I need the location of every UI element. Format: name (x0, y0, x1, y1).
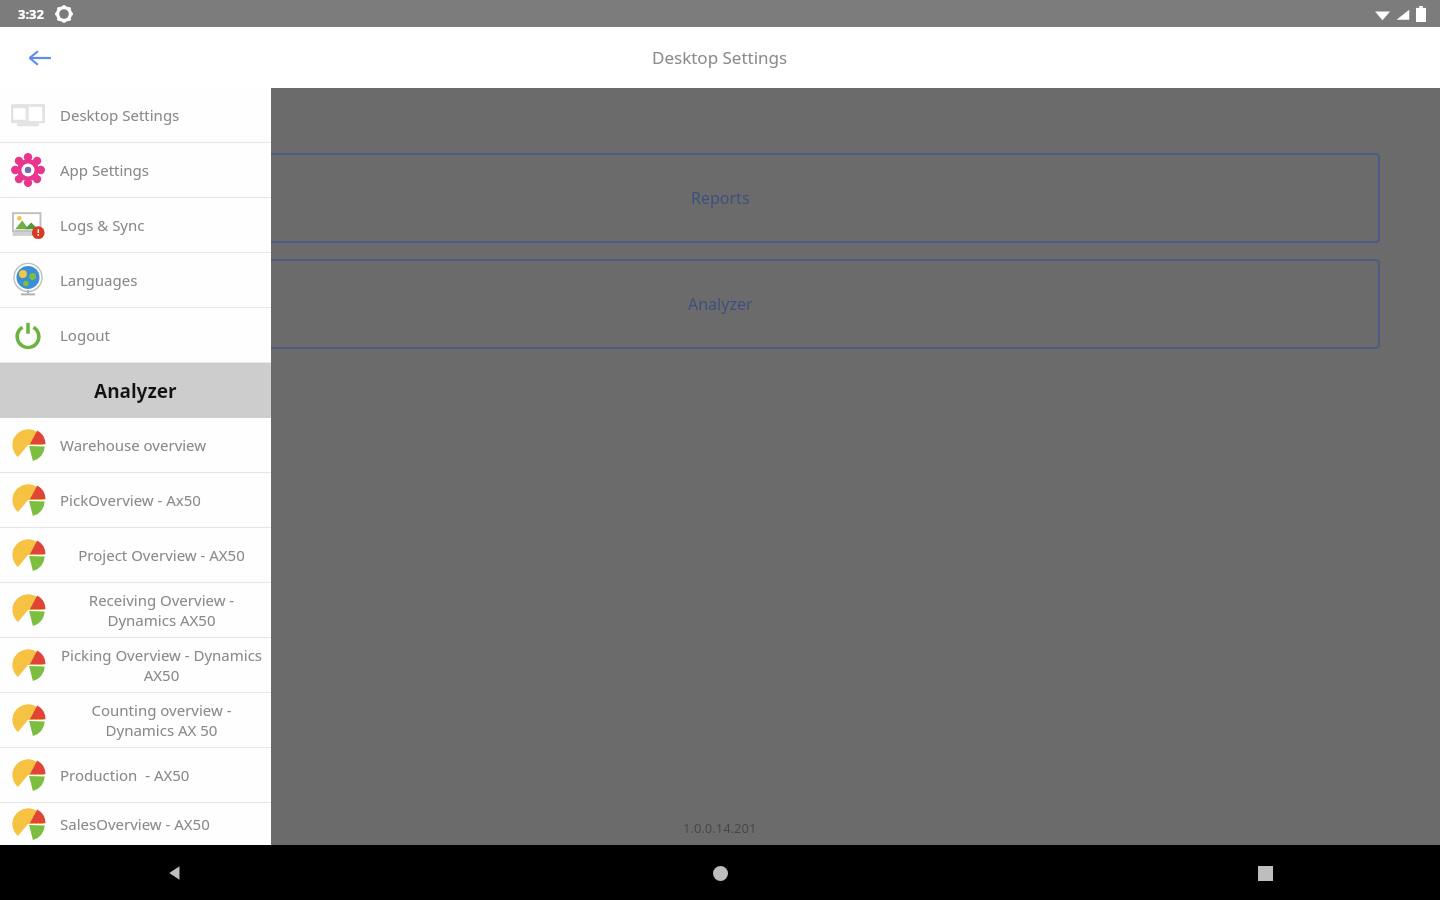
button[interactable]: Back (18, 36, 62, 80)
staticText: 1.0.0.14.201 (683, 819, 757, 837)
button[interactable]: PickOverview - Ax50 (0, 473, 271, 528)
staticText: Languages (60, 270, 138, 290)
button[interactable]: Logs & Sync (0, 198, 271, 253)
button[interactable]: Project Overview - AX50 (0, 528, 271, 583)
button[interactable]: Warehouse overview (0, 418, 271, 473)
button[interactable]: App Settings (0, 143, 271, 198)
staticText: Warehouse overview (60, 435, 207, 455)
button[interactable]: Picking Overview - Dynamics AX50 (0, 638, 271, 693)
button[interactable]: Home (695, 848, 745, 898)
staticText: Production - AX50 (60, 765, 190, 785)
button[interactable]: Logout (0, 308, 271, 363)
staticText: Project Overview - AX50 (78, 545, 245, 565)
button[interactable]: Desktop Settings (0, 88, 271, 143)
staticText: App Settings (60, 160, 150, 180)
staticText: Receiving Overview - Dynamics AX50 (60, 590, 263, 630)
staticText: Analyzer (94, 378, 177, 404)
staticText: Reports (691, 187, 750, 209)
button[interactable]: Back (150, 848, 200, 898)
staticText: SalesOverview - AX50 (60, 814, 210, 834)
staticText: Logout (60, 325, 110, 345)
button[interactable]: Recent apps (1240, 848, 1290, 898)
staticText: 3:32 (18, 5, 44, 23)
button[interactable]: Reports (6, 153, 1380, 243)
button[interactable]: SalesOverview - AX50 (0, 803, 271, 845)
staticText: Desktop Settings (652, 46, 788, 69)
staticText: Desktop Settings (60, 105, 180, 125)
staticText: Counting overview - Dynamics AX 50 (60, 700, 263, 740)
button[interactable]: Languages (0, 253, 271, 308)
staticText: Logs & Sync (60, 215, 145, 235)
button[interactable]: Counting overview - Dynamics AX 50 (0, 693, 271, 748)
button[interactable]: Receiving Overview - Dynamics AX50 (0, 583, 271, 638)
button[interactable]: Production - AX50 (0, 748, 271, 803)
button[interactable]: Analyzer (6, 259, 1380, 349)
staticText: Picking Overview - Dynamics AX50 (60, 645, 263, 685)
staticText: Analyzer (688, 293, 753, 315)
staticText: PickOverview - Ax50 (60, 490, 201, 510)
